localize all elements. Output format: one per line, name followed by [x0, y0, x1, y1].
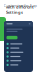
button[interactable]	[4, 63, 33, 67]
button[interactable]	[4, 59, 33, 63]
button[interactable]	[4, 54, 33, 59]
staticText: with different Settings	[6, 4, 34, 15]
button[interactable]	[4, 42, 33, 46]
staticText: Customize the App	[3, 3, 36, 8]
button[interactable]	[4, 50, 33, 54]
button[interactable]	[4, 32, 17, 39]
button[interactable]	[4, 46, 33, 50]
